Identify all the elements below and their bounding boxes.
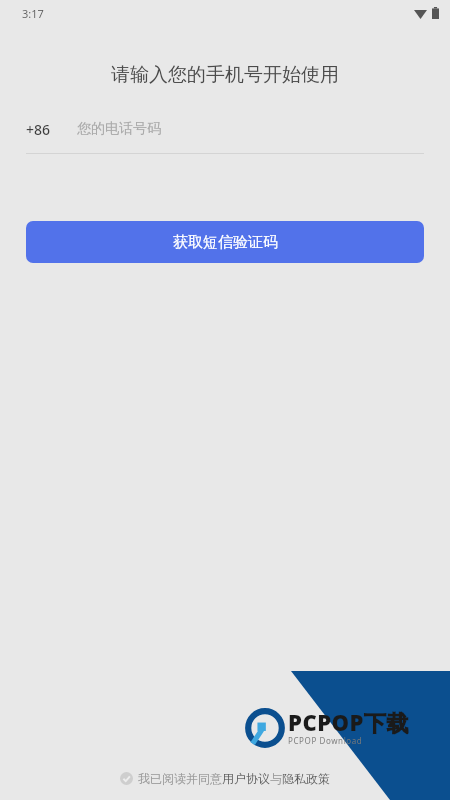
staticText: 获取短信验证码	[173, 233, 278, 252]
staticText: 请输入您的手机号开始使用	[0, 63, 450, 87]
staticText: PCPOP Download	[288, 735, 363, 746]
other: Agree to terms checkbox	[120, 772, 133, 785]
button[interactable]: Agree to terms checkbox	[120, 771, 330, 786]
staticText: PCPOP下载	[288, 707, 410, 737]
button[interactable]: +86	[26, 114, 424, 144]
staticText: +86	[26, 120, 51, 139]
staticText: 3:17	[22, 6, 44, 21]
button[interactable]: 获取短信验证码	[26, 221, 424, 263]
staticText: 我已阅读并同意用户协议与隐私政策	[138, 771, 330, 786]
staticText: 您的电话号码	[77, 120, 161, 138]
